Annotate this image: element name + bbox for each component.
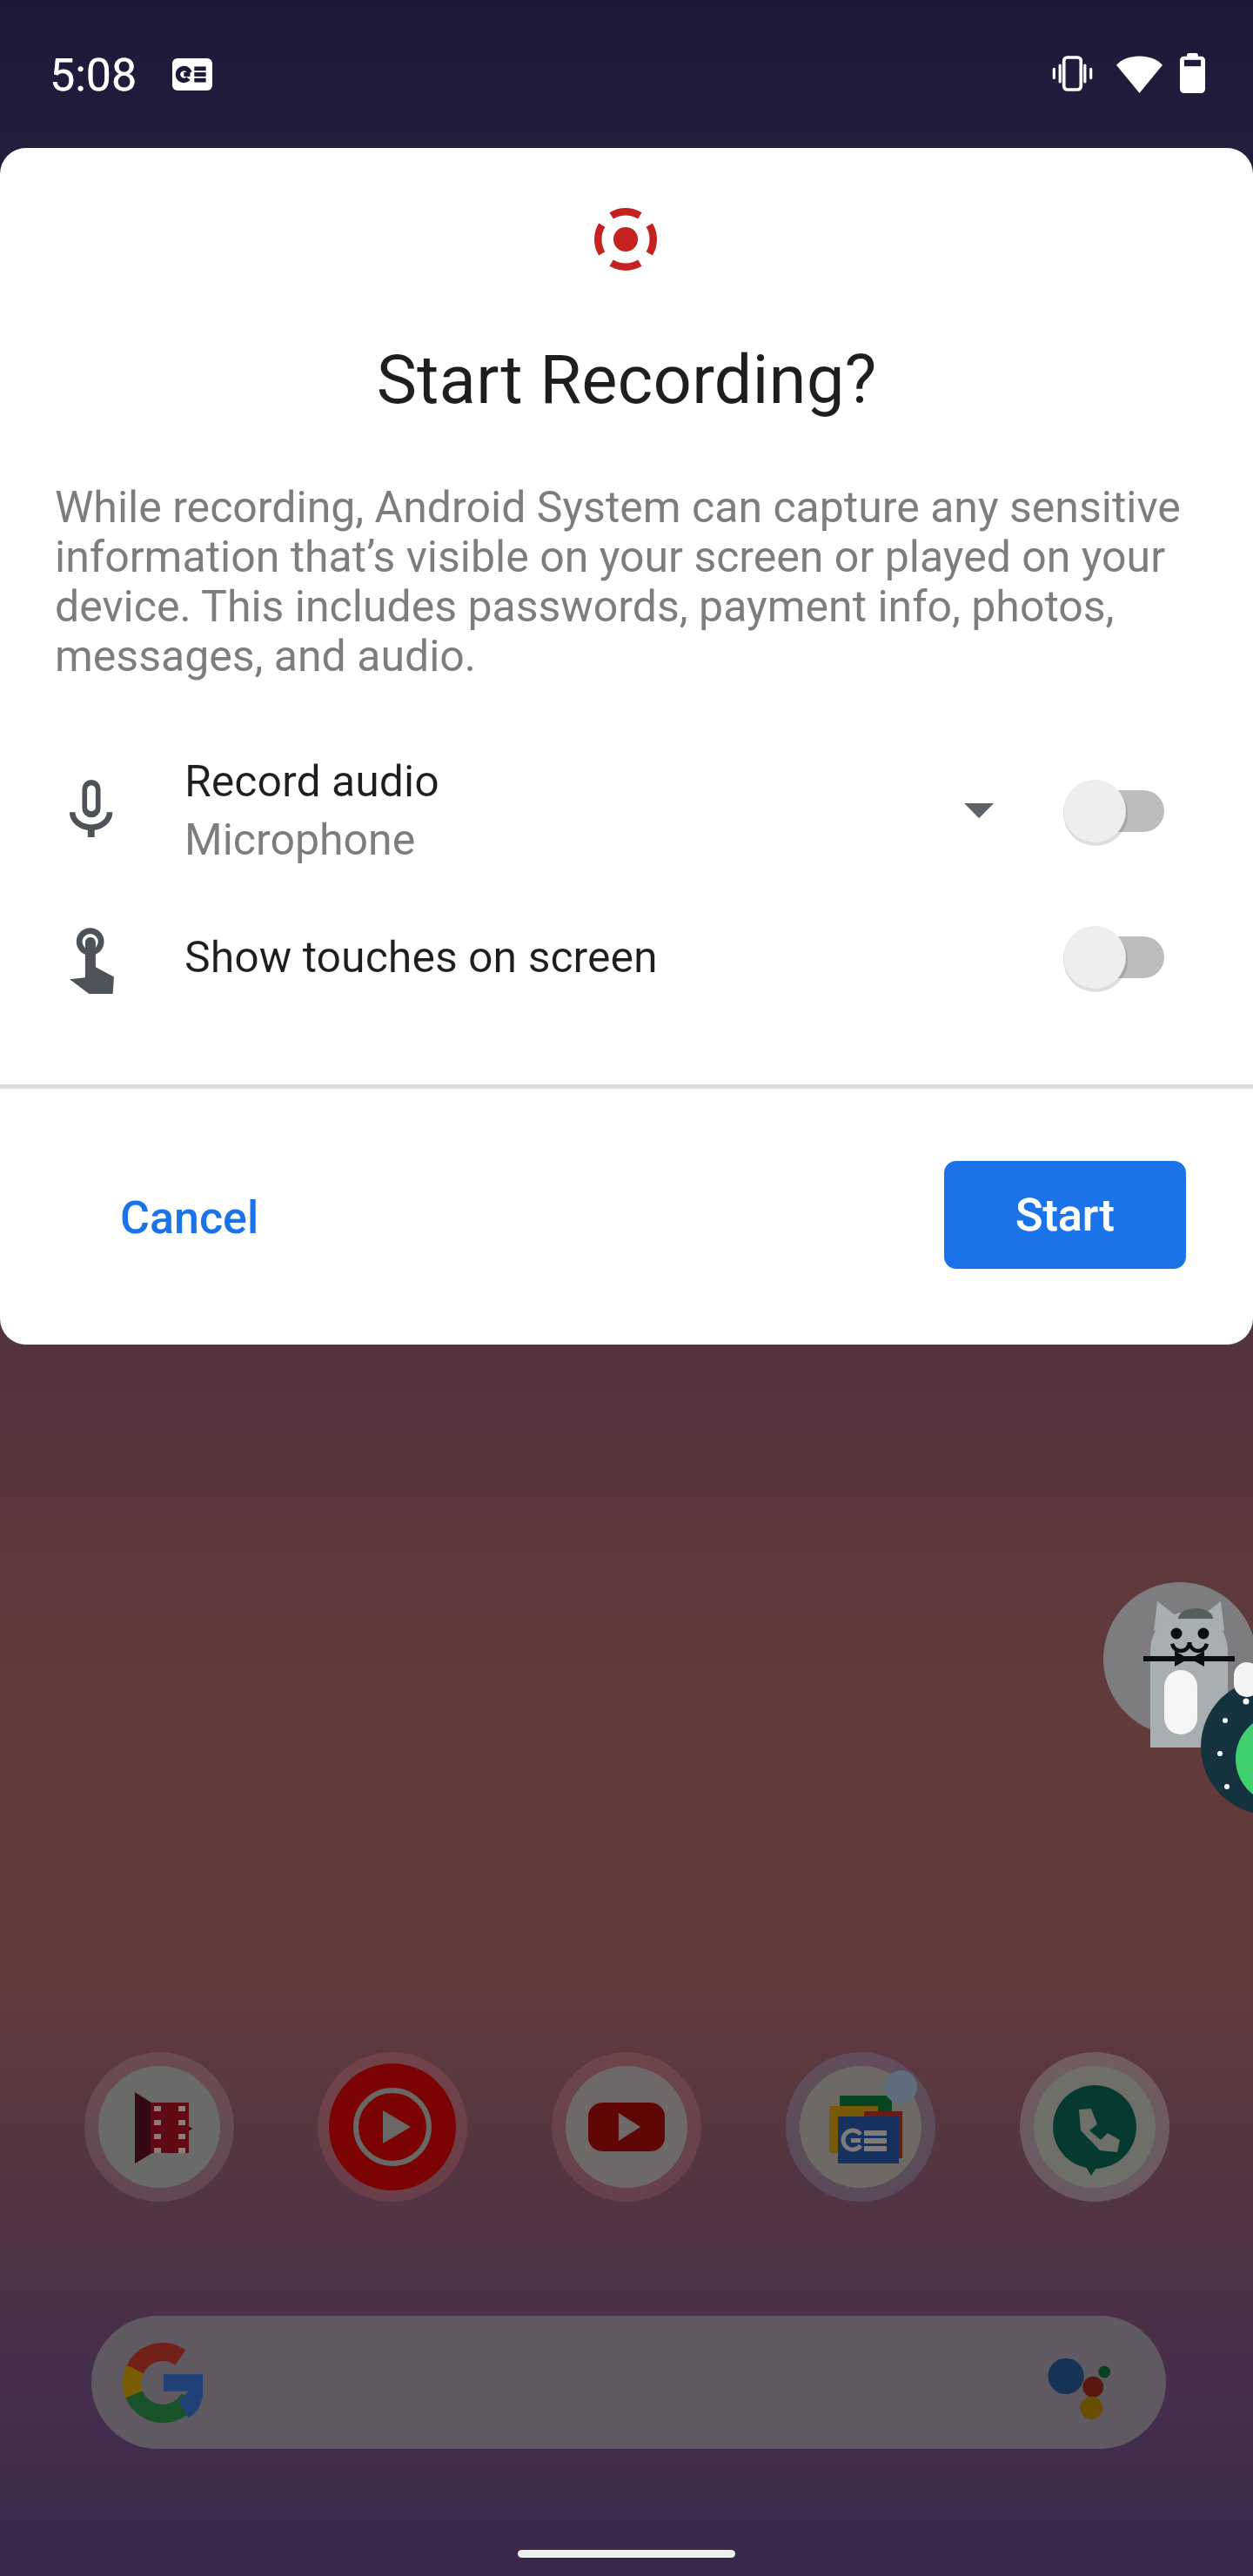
staticText: While recording, Android System can capt… bbox=[55, 482, 1202, 681]
button[interactable]: Cancel bbox=[96, 1164, 284, 1271]
button[interactable]: App 3 bbox=[548, 2049, 705, 2205]
staticText: Start Recording? bbox=[0, 340, 1253, 419]
button[interactable]: Toggle bbox=[1063, 776, 1171, 846]
button[interactable]: App 4 bbox=[782, 2049, 939, 2205]
button[interactable]: Show touches on screen bbox=[0, 896, 1253, 1018]
button[interactable]: Toggle bbox=[1063, 922, 1171, 992]
button[interactable]: Record audio bbox=[0, 746, 1253, 876]
staticText: Cancel bbox=[120, 1191, 259, 1244]
button[interactable]: Search bbox=[91, 2316, 1166, 2449]
staticText: Show touches on screen bbox=[184, 932, 658, 983]
button[interactable]: Start bbox=[944, 1161, 1186, 1269]
staticText: Start bbox=[1015, 1189, 1115, 1242]
button[interactable]: App 2 bbox=[314, 2049, 471, 2205]
button[interactable]: App 1 bbox=[81, 2049, 238, 2205]
staticText: Microphone bbox=[184, 815, 416, 866]
staticText: 5:08 bbox=[50, 49, 137, 102]
button[interactable]: Choose audio source bbox=[940, 783, 995, 839]
staticText: Record audio bbox=[184, 756, 439, 808]
other: Cat widget bbox=[1103, 1582, 1253, 1735]
button[interactable]: App 5 bbox=[1016, 2049, 1173, 2205]
